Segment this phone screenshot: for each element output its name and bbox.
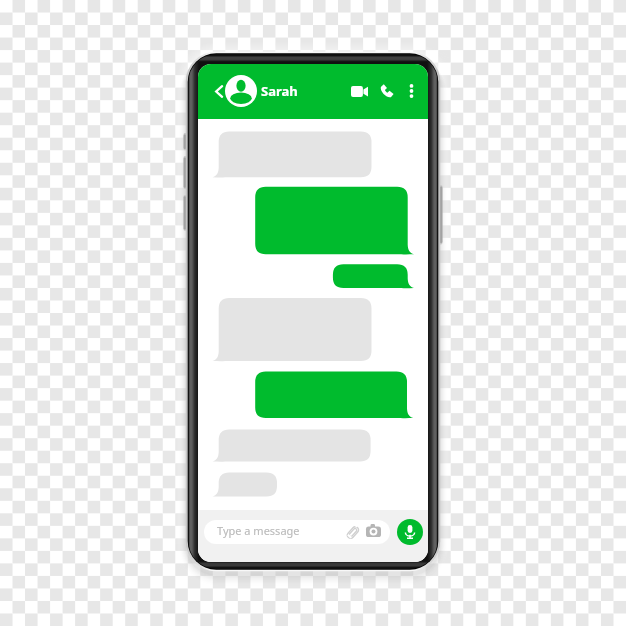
button[interactable]: Contact photo (225, 75, 257, 107)
staticText: Type a message (217, 523, 300, 538)
button[interactable]: More options (402, 81, 420, 101)
button[interactable]: Record voice message (397, 519, 423, 545)
button[interactable]: Attach file (346, 525, 360, 540)
button[interactable]: Call (377, 81, 397, 101)
button[interactable]: Camera (366, 524, 381, 537)
staticText: Sarah (261, 82, 298, 100)
button[interactable]: Type a message (204, 520, 390, 544)
button[interactable]: Back (211, 81, 226, 102)
button[interactable]: Video call (348, 81, 371, 102)
